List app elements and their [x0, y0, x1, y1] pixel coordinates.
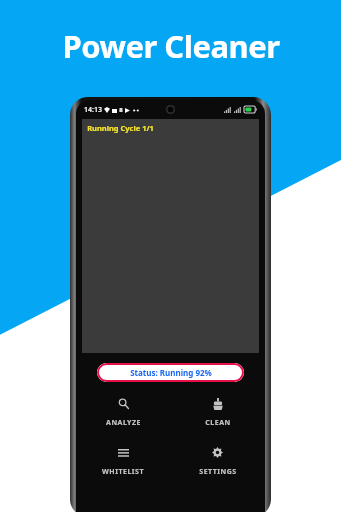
staticText: ANALYZE — [106, 418, 141, 428]
other: CLEAN — [210, 396, 225, 411]
button[interactable]: CLEAN — [170, 394, 265, 430]
button[interactable]: WHITELIST — [76, 443, 170, 479]
button[interactable]: SETTINGS — [170, 443, 265, 479]
other: SETTINGS — [210, 445, 225, 460]
button[interactable]: ANALYZE — [76, 394, 170, 430]
staticText: 14:13 — [84, 105, 102, 115]
staticText: WHITELIST — [102, 467, 144, 477]
other: ANALYZE — [116, 396, 131, 411]
staticText: Status: Running 92% — [130, 367, 212, 378]
button[interactable]: Status: Running 92% — [97, 363, 244, 382]
staticText: SETTINGS — [199, 467, 237, 477]
staticText: 8 — [119, 106, 123, 114]
staticText: CLEAN — [205, 418, 231, 428]
staticText: Power Cleaner — [62, 25, 280, 67]
other: WHITELIST — [116, 445, 131, 460]
staticText: Running Cycle 1/1 — [87, 123, 154, 133]
